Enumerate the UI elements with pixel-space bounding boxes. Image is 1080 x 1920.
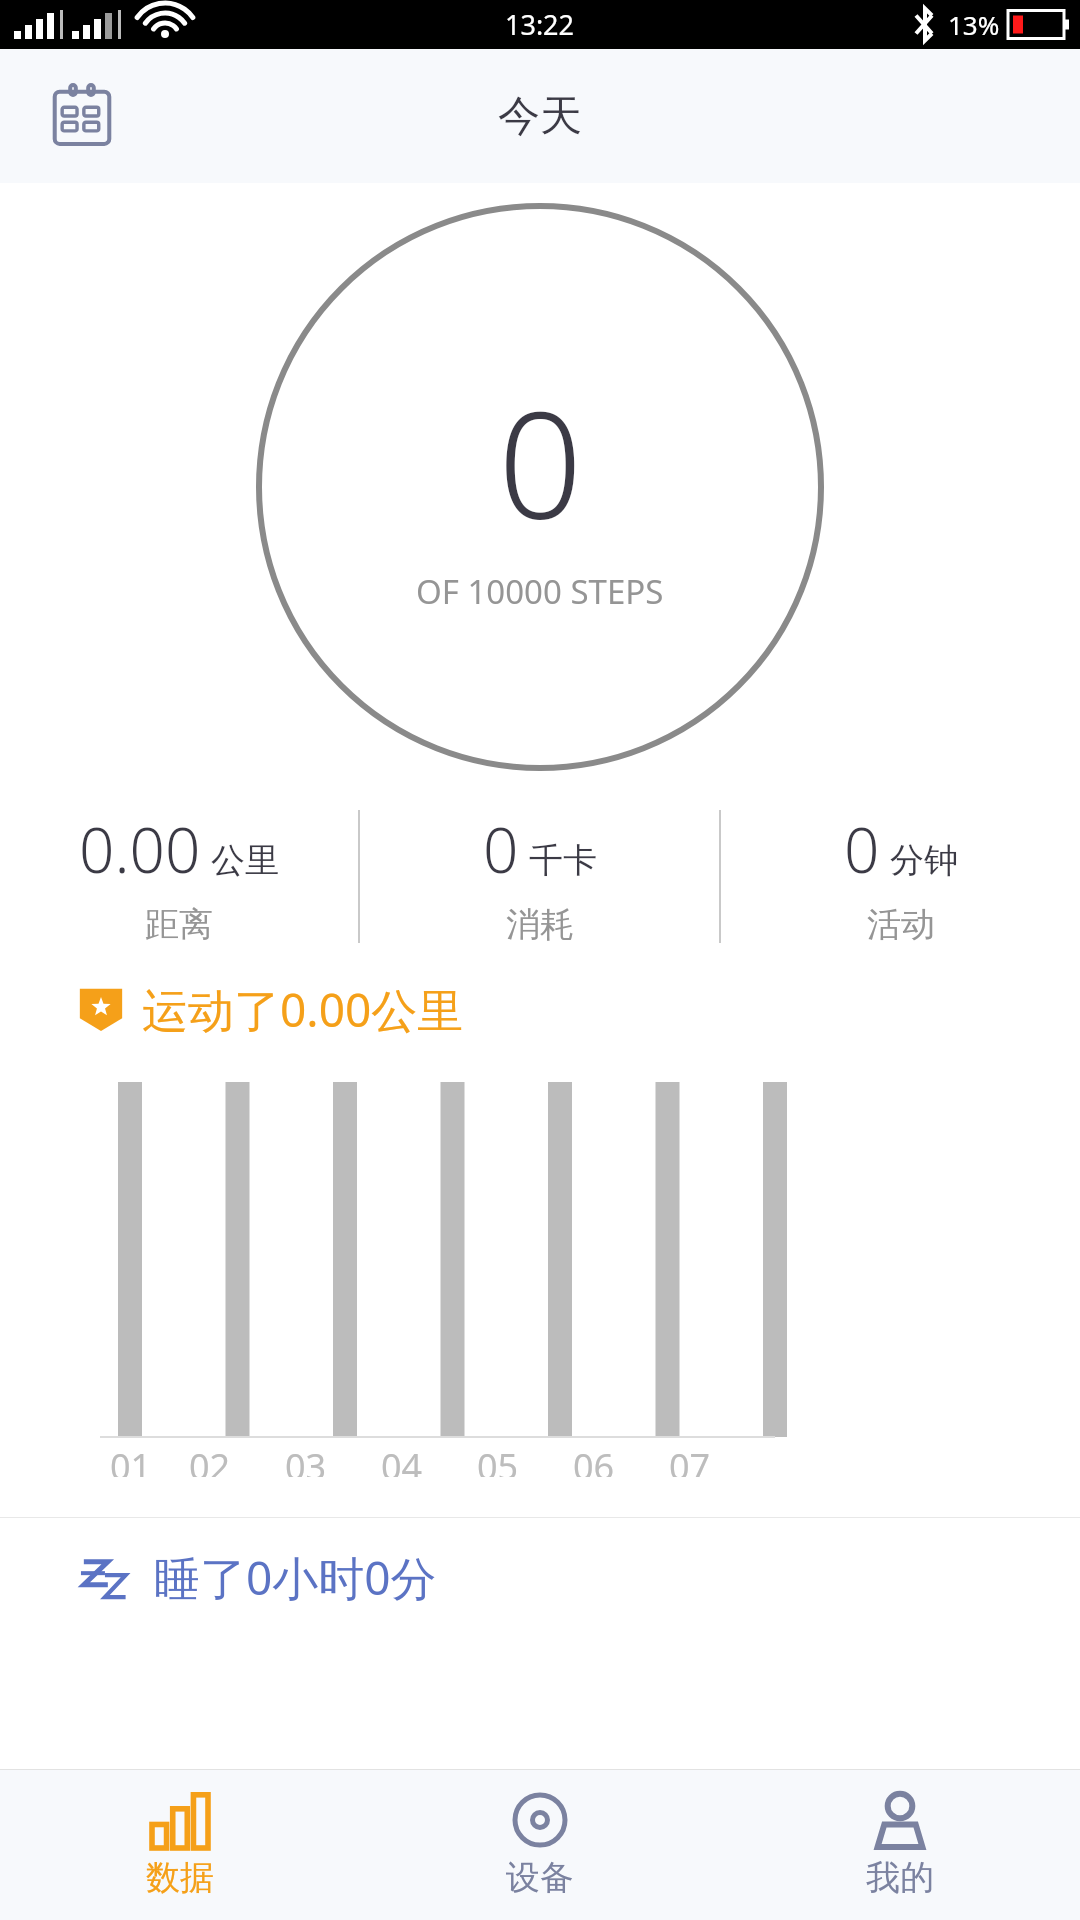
staticText: 01 (110, 1442, 152, 1477)
staticText: 分钟 (890, 839, 958, 882)
staticText: 0 (844, 807, 880, 891)
staticText: 06 (573, 1442, 615, 1477)
staticText: 活动 (867, 903, 935, 946)
staticText: 03 (285, 1442, 327, 1477)
button[interactable]: 设备 (360, 1770, 720, 1920)
button[interactable]: 0.00 (0, 807, 358, 946)
button[interactable]: 0 (360, 807, 719, 946)
button[interactable]: 我的 (720, 1770, 1080, 1920)
staticText: 运动了0.00公里 (142, 978, 464, 1041)
button[interactable]: Calendar (40, 74, 124, 158)
staticText: 睡了0小时0分 (154, 1546, 437, 1609)
staticText: 04 (381, 1442, 423, 1477)
staticText: 0.00 (79, 807, 201, 891)
button[interactable]: 运动了0.00公里 (0, 961, 1080, 1057)
staticText: 05 (477, 1442, 519, 1477)
staticText: 07 (669, 1442, 711, 1477)
staticText: 距离 (145, 903, 213, 946)
staticText: 13:22 (505, 6, 575, 43)
staticText: 千卡 (529, 839, 597, 882)
staticText: 02 (189, 1442, 231, 1477)
staticText: 13% (948, 7, 1000, 42)
staticText: 消耗 (506, 903, 574, 946)
staticText: OF 10000 STEPS (416, 569, 664, 614)
staticText: 设备 (506, 1856, 574, 1899)
staticText: 今天 (498, 90, 582, 143)
button[interactable]: 0 (721, 807, 1080, 946)
staticText: 数据 (146, 1856, 214, 1899)
button[interactable]: 数据 (0, 1770, 360, 1920)
staticText: 0 (483, 807, 519, 891)
staticText: 公里 (211, 839, 279, 882)
staticText: 我的 (866, 1856, 934, 1899)
staticText: 0 (498, 361, 583, 563)
button[interactable]: 睡了0小时0分 (0, 1518, 1080, 1636)
